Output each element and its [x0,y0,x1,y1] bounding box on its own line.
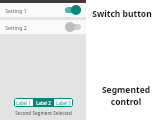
button[interactable]: Label 3 [54,98,73,107]
staticText: Setting 2 [5,24,27,31]
staticText: Second Segment Selected [15,110,72,116]
button[interactable]: Label 1 [14,98,33,107]
button[interactable]: Setting 1 [0,3,86,17]
staticText: Label 3 [56,100,71,106]
staticText: Segmented control [92,84,160,108]
button[interactable]: Label 2 [34,98,53,107]
button[interactable]: Switch off [65,22,81,32]
staticText: Label 1 [16,100,31,106]
staticText: Setting 1 [5,7,27,14]
staticText: Switch button [92,8,152,20]
staticText: Label 2 [36,100,51,106]
button[interactable]: Switch on [65,5,81,15]
button[interactable]: Setting 2 [0,20,86,34]
